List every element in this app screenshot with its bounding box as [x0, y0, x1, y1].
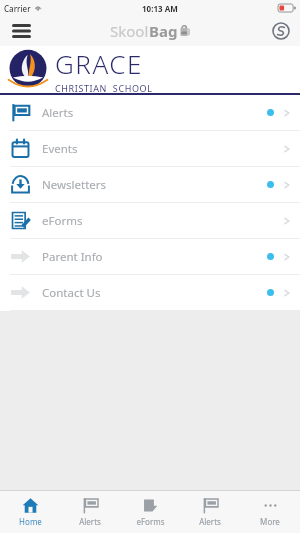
staticText: More [260, 516, 280, 527]
staticText: Skool [110, 21, 149, 41]
button[interactable]: eForms [120, 491, 180, 533]
button[interactable]: Newsletters [0, 167, 300, 203]
staticText: Parent Info [42, 249, 103, 265]
button[interactable]: Events [0, 131, 300, 167]
staticText: Alerts [42, 105, 74, 121]
staticText: CHRISTIAN SCHOOL [55, 82, 153, 93]
button[interactable]: Parent Info [0, 239, 300, 275]
staticText: eForms [42, 213, 83, 229]
button[interactable]: Home [0, 491, 60, 533]
staticText: Contact Us [42, 285, 101, 301]
staticText: Home [19, 516, 42, 527]
button[interactable]: More [240, 491, 300, 533]
staticText: 10:13 AM [142, 3, 178, 14]
staticText: Newsletters [42, 177, 107, 193]
staticText: eForms [136, 516, 165, 527]
button[interactable]: Menu [6, 16, 36, 46]
button[interactable]: Sync [268, 18, 294, 44]
staticText: Events [42, 141, 78, 157]
staticText: Alerts [199, 516, 221, 527]
button[interactable]: Alerts [0, 95, 300, 131]
button[interactable]: Alerts [180, 491, 240, 533]
button[interactable]: eForms [0, 203, 300, 239]
staticText: Carrier [4, 3, 31, 14]
staticText: Alerts [79, 516, 101, 527]
staticText: GRACE [55, 46, 143, 81]
staticText: Bag [149, 21, 178, 41]
button[interactable]: Contact Us [0, 275, 300, 311]
button[interactable]: Alerts [60, 491, 120, 533]
